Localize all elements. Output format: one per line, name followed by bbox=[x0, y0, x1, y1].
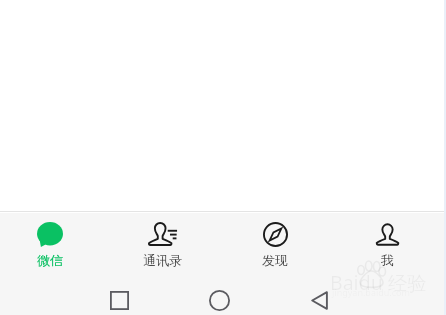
staticText: 通讯录 bbox=[143, 252, 182, 268]
button[interactable]: Recents bbox=[98, 280, 140, 315]
button[interactable]: 我 bbox=[331, 212, 444, 272]
staticText: 发现 bbox=[262, 252, 288, 268]
button[interactable]: Back bbox=[298, 280, 340, 315]
staticText: Baidu 经验 bbox=[330, 269, 427, 296]
staticText: 我 bbox=[381, 252, 394, 268]
button[interactable]: 微信 bbox=[0, 212, 106, 272]
staticText: 微信 bbox=[37, 252, 63, 268]
staticText: jingyan.baidu.com bbox=[332, 286, 410, 298]
button[interactable]: 发现 bbox=[218, 212, 331, 272]
button[interactable]: Home bbox=[198, 280, 240, 315]
button[interactable]: 通讯录 bbox=[106, 212, 219, 272]
